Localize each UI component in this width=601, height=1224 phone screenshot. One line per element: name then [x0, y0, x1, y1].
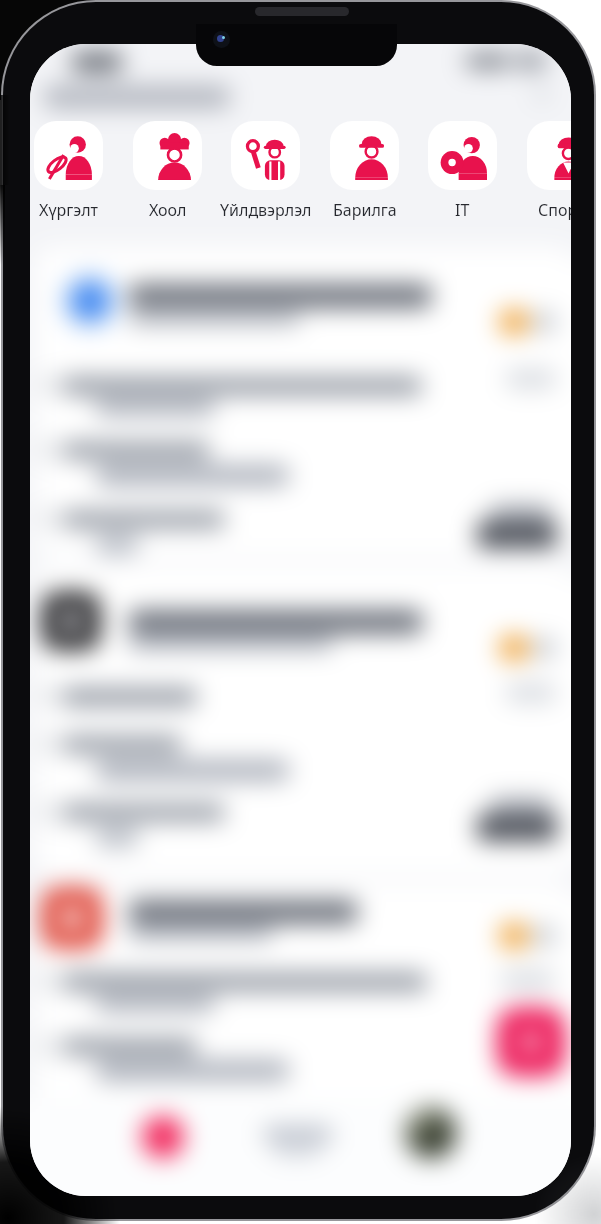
staticText: Хоол	[149, 199, 187, 221]
staticText: Спорт	[538, 199, 571, 221]
button[interactable]: Хүргэлт	[30, 121, 118, 221]
button[interactable]: Үйлдвэрлэл	[216, 121, 315, 221]
button[interactable]	[36, 565, 571, 875]
button[interactable]	[497, 1008, 565, 1076]
button[interactable]: Хоол	[118, 121, 217, 221]
button[interactable]	[263, 1122, 333, 1150]
button[interactable]	[142, 1116, 184, 1158]
staticText: IT	[455, 199, 470, 221]
button[interactable]: Барилга	[315, 121, 414, 221]
staticText: Барилга	[333, 199, 397, 221]
staticText: Хүргэлт	[39, 199, 99, 221]
button[interactable]	[405, 1107, 457, 1159]
button[interactable]: Спорт	[512, 121, 571, 221]
button[interactable]	[36, 247, 571, 557]
staticText: Үйлдвэрлэл	[220, 199, 312, 221]
button[interactable]	[36, 883, 571, 1196]
button[interactable]: IT	[413, 121, 512, 221]
